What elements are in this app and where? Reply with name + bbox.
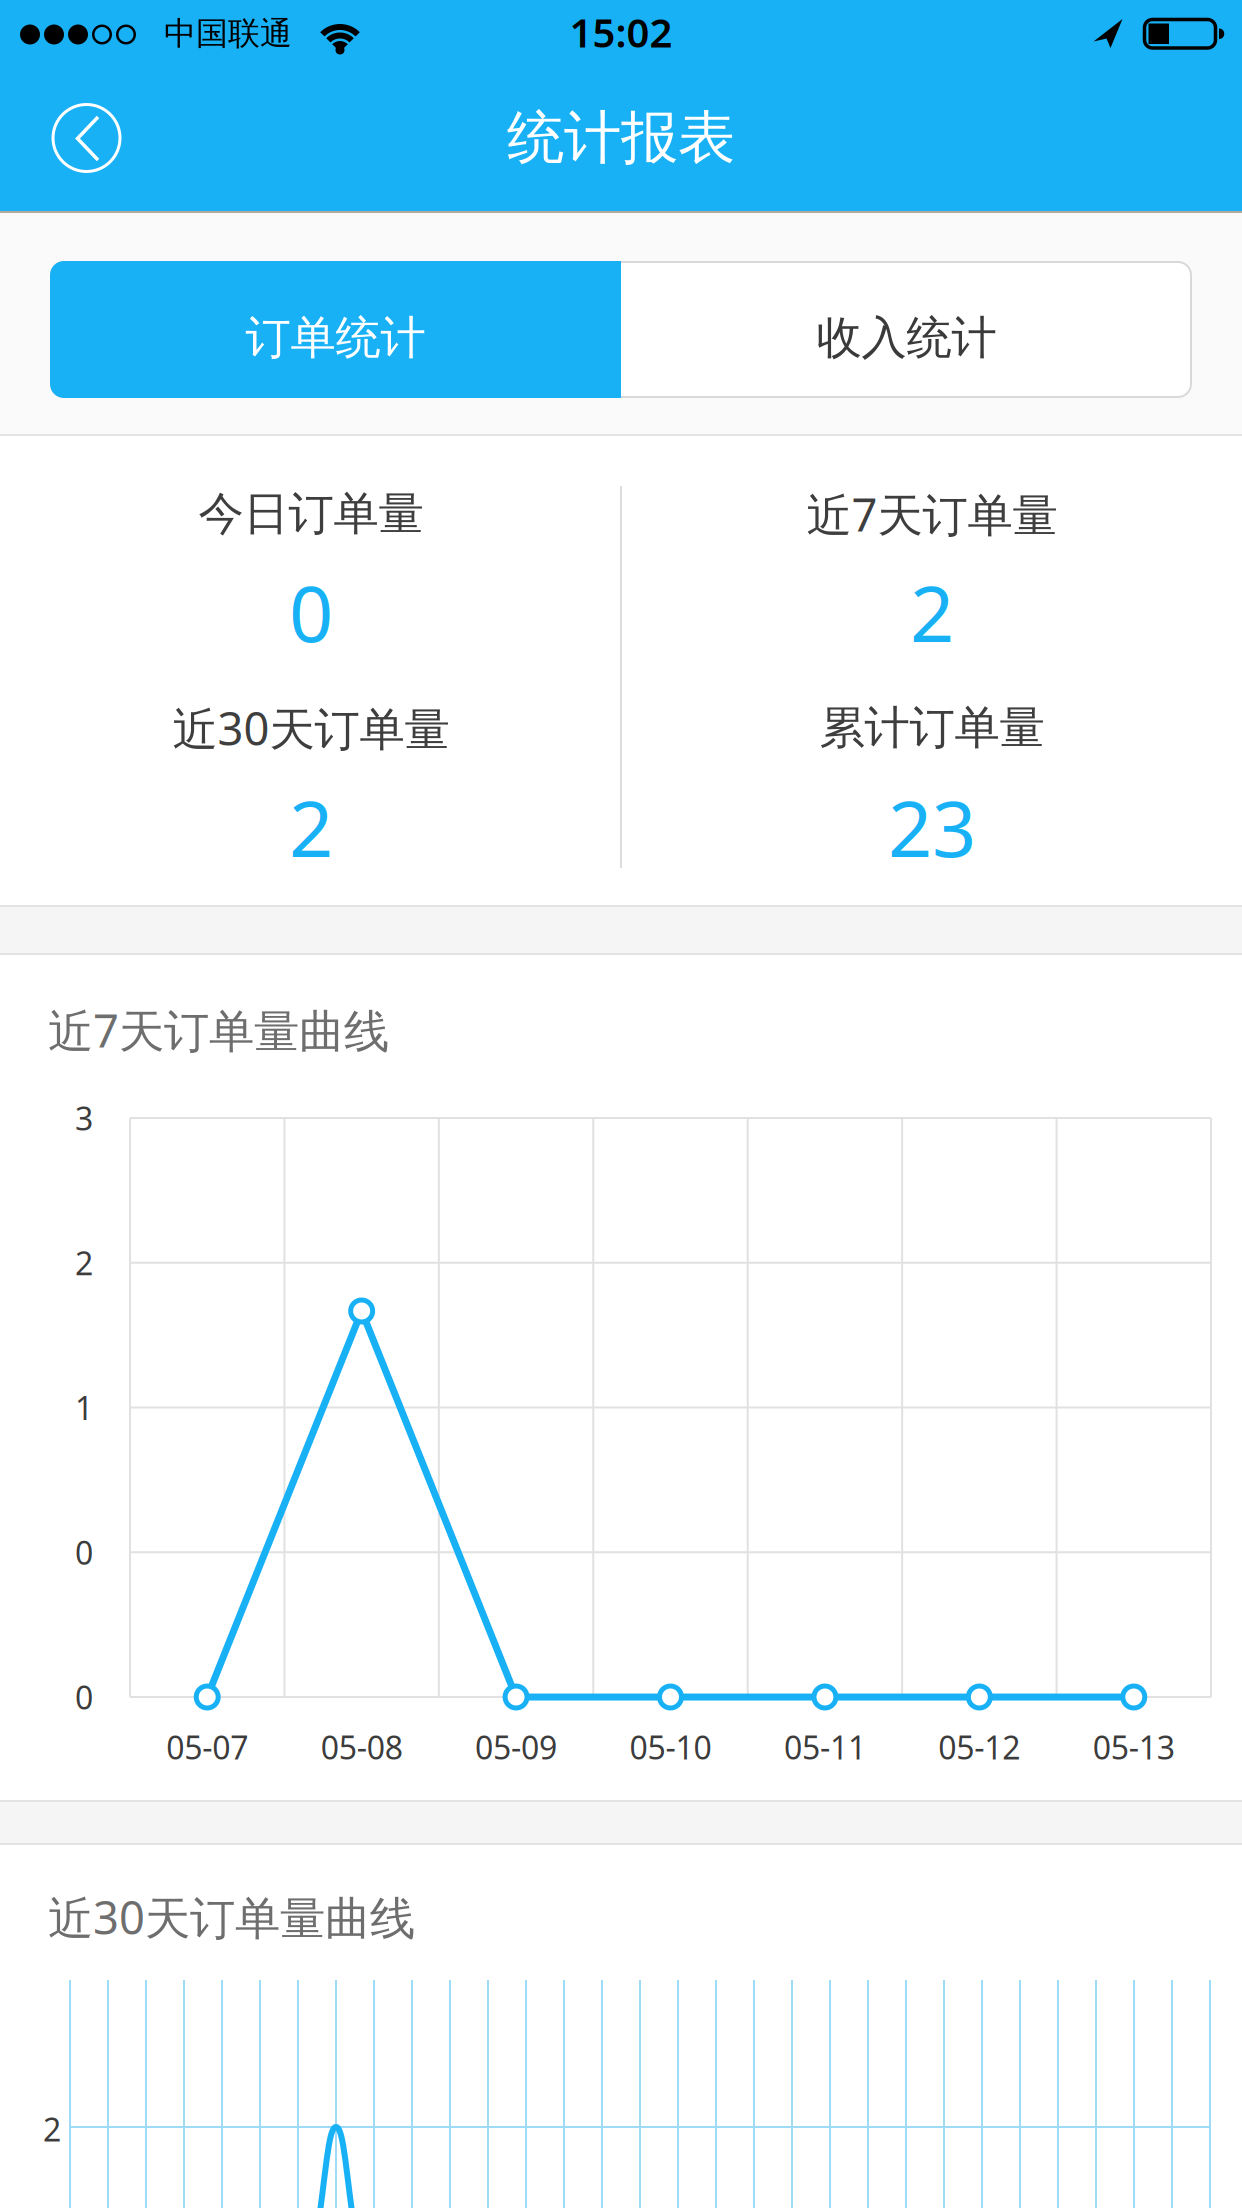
staticText: 近7天订单量曲线	[48, 1000, 389, 1060]
staticText: 05-09	[475, 1726, 557, 1768]
staticText: 3	[75, 1097, 93, 1139]
staticText: 15:02	[569, 5, 672, 58]
staticText: 2	[910, 561, 954, 663]
staticText: 05-13	[1093, 1726, 1175, 1768]
staticText: 2	[43, 2108, 61, 2150]
staticText: 收入统计	[816, 310, 996, 366]
staticText: 0	[75, 1676, 93, 1718]
staticText: 订单统计	[245, 310, 425, 366]
staticText: 今日订单量	[198, 486, 423, 542]
staticText: 累计订单量	[819, 700, 1044, 756]
staticText: 05-11	[784, 1726, 866, 1768]
staticText: 近7天订单量	[806, 484, 1057, 544]
staticText: 2	[75, 1241, 93, 1284]
button[interactable]: 收入统计	[621, 261, 1192, 398]
staticText: 05-12	[938, 1726, 1020, 1768]
staticText: 05-07	[166, 1726, 248, 1768]
staticText: 近30天订单量曲线	[48, 1887, 415, 1947]
staticText: 05-08	[321, 1726, 403, 1768]
staticText: 05-10	[629, 1726, 711, 1768]
staticText: 0	[75, 1531, 93, 1573]
staticText: 0	[289, 561, 333, 663]
staticText: 2	[289, 776, 333, 878]
staticText: 统计报表	[507, 103, 735, 173]
button[interactable]: Back	[48, 100, 124, 176]
staticText: 23	[888, 776, 976, 878]
staticText: 近30天订单量	[172, 698, 449, 758]
staticText: 1	[75, 1386, 93, 1429]
button[interactable]: 订单统计	[0, 261, 621, 398]
staticText: 中国联通	[164, 14, 292, 53]
